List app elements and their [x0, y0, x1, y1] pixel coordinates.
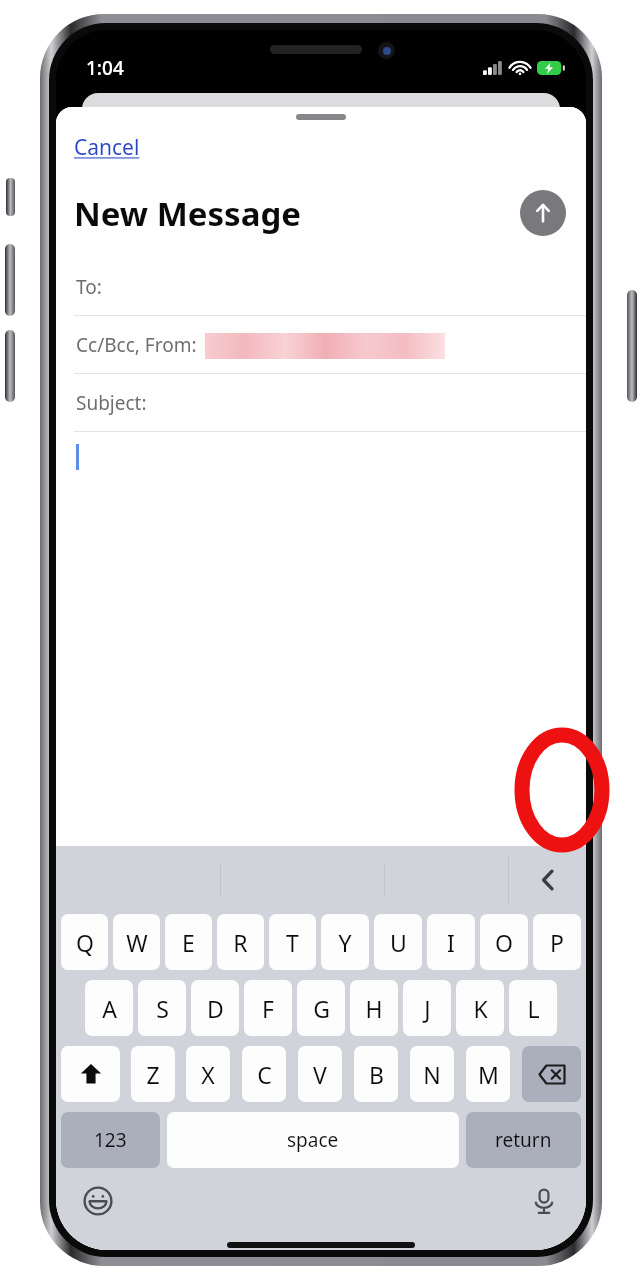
button[interactable]: K	[456, 980, 504, 1036]
button[interactable]: Z	[131, 1046, 175, 1102]
staticText: A	[102, 993, 117, 1024]
button[interactable]: A	[85, 980, 133, 1036]
button[interactable]: Cc/Bcc, From:	[56, 316, 586, 374]
button[interactable]: Dictate	[522, 1179, 566, 1223]
button[interactable]: Key	[522, 1046, 581, 1102]
button[interactable]: O	[480, 914, 528, 970]
button[interactable]: T	[269, 914, 316, 970]
button[interactable]: L	[509, 980, 557, 1036]
staticText: 1:04	[86, 55, 124, 81]
staticText: return	[495, 1127, 552, 1153]
staticText: S	[156, 993, 169, 1024]
button[interactable]: Q	[61, 914, 108, 970]
staticText: Cc/Bcc, From:	[76, 332, 197, 358]
button[interactable]: C	[242, 1046, 286, 1102]
staticText: O	[495, 927, 513, 958]
button[interactable]: Emoji	[76, 1179, 120, 1223]
button[interactable]: G	[297, 980, 345, 1036]
button[interactable]: M	[466, 1046, 510, 1102]
staticText: X	[201, 1059, 215, 1090]
button[interactable]	[56, 432, 586, 846]
button[interactable]: J	[403, 980, 451, 1036]
staticText: J	[424, 993, 431, 1024]
button[interactable]: return	[466, 1112, 581, 1168]
staticText: H	[365, 993, 383, 1024]
button[interactable]: Subject:	[56, 374, 586, 432]
staticText: Z	[146, 1059, 160, 1090]
staticText: New Message	[74, 191, 301, 236]
button[interactable]: Y	[321, 914, 369, 970]
button[interactable]: F	[244, 980, 292, 1036]
staticText: T	[286, 927, 299, 958]
staticText: W	[126, 927, 148, 958]
staticText: P	[550, 927, 564, 958]
staticText: To:	[76, 274, 102, 300]
staticText: F	[262, 993, 274, 1024]
staticText: L	[527, 993, 540, 1024]
button[interactable]: Key	[61, 1046, 120, 1102]
button[interactable]: Previous	[528, 860, 568, 900]
button[interactable]: E	[165, 914, 212, 970]
button[interactable]: I	[427, 914, 475, 970]
staticText: V	[313, 1059, 327, 1090]
staticText: Subject:	[76, 390, 147, 416]
button[interactable]: 123	[61, 1112, 160, 1168]
button[interactable]: W	[113, 914, 160, 970]
staticText: I	[447, 927, 455, 958]
button[interactable]: N	[410, 1046, 454, 1102]
staticText: U	[390, 927, 407, 958]
button[interactable]: V	[298, 1046, 342, 1102]
staticText: Y	[338, 927, 352, 958]
staticText: space	[287, 1127, 339, 1153]
button[interactable]: To:	[56, 258, 586, 316]
button[interactable]: P	[533, 914, 581, 970]
staticText: M	[478, 1059, 499, 1090]
staticText: D	[207, 993, 224, 1024]
staticText: E	[182, 927, 195, 958]
staticText: Cancel	[74, 133, 140, 162]
staticText: C	[257, 1059, 272, 1090]
button[interactable]: S	[138, 980, 186, 1036]
button[interactable]: Send	[520, 190, 566, 236]
button[interactable]: Cancel	[68, 129, 146, 166]
button[interactable]: U	[374, 914, 422, 970]
button[interactable]: space	[167, 1112, 459, 1168]
staticText: K	[473, 993, 488, 1024]
staticText: G	[313, 993, 330, 1024]
staticText: 123	[94, 1127, 127, 1153]
button[interactable]: R	[217, 914, 264, 970]
button[interactable]: X	[186, 1046, 230, 1102]
staticText: N	[423, 1059, 441, 1090]
staticText: R	[233, 927, 248, 958]
staticText: Q	[76, 927, 94, 958]
button[interactable]: B	[354, 1046, 398, 1102]
staticText: B	[369, 1059, 384, 1090]
button[interactable]: D	[191, 980, 239, 1036]
button[interactable]: H	[350, 980, 398, 1036]
